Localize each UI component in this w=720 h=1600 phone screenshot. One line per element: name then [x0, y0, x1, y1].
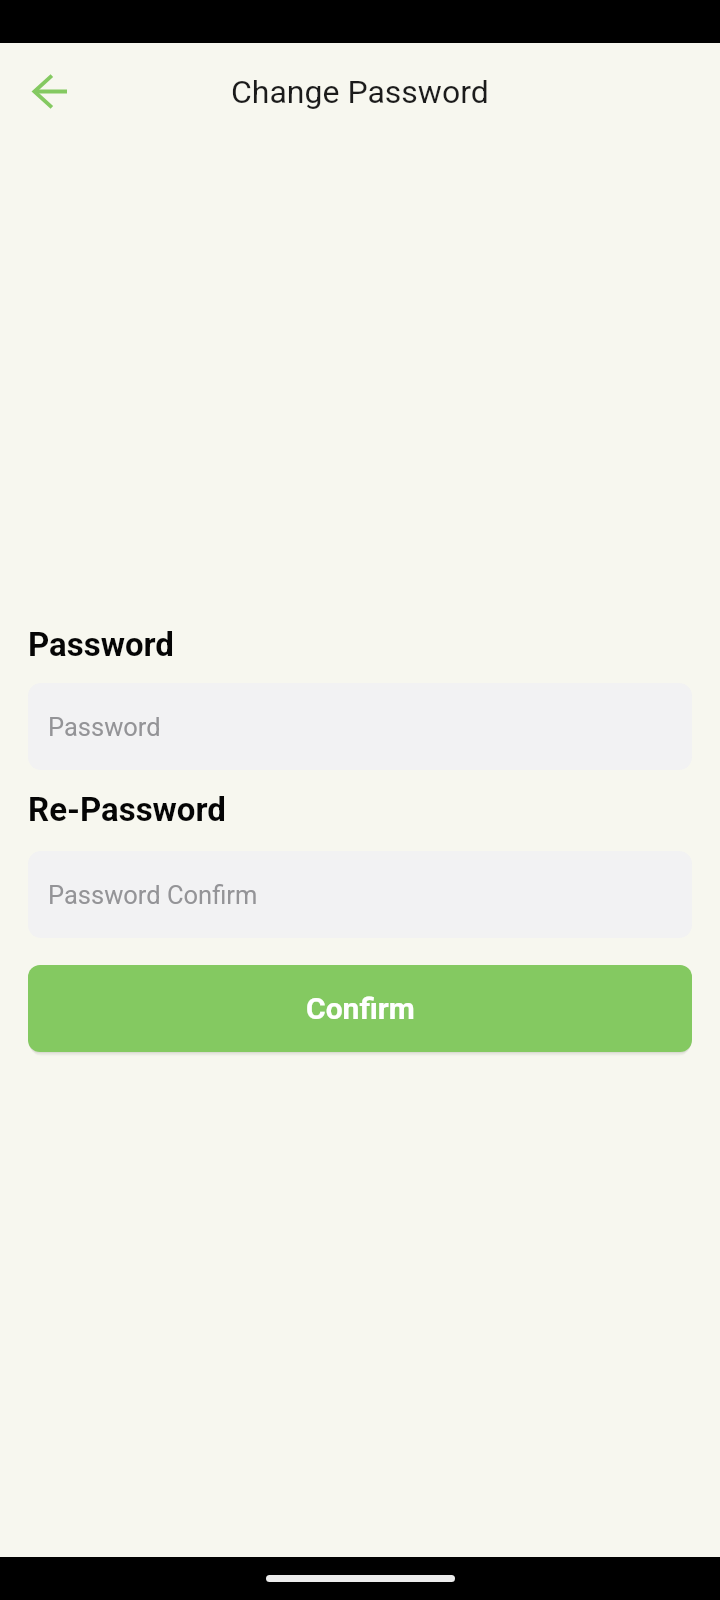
- staticText: Password: [48, 712, 161, 742]
- staticText: Confirm: [306, 991, 415, 1026]
- button[interactable]: Confirm: [28, 965, 692, 1052]
- button[interactable]: Password: [28, 683, 692, 770]
- staticText: Password Confirm: [48, 880, 258, 910]
- button[interactable]: Password Confirm: [28, 851, 692, 938]
- button[interactable]: Back: [17, 59, 81, 123]
- staticText: Password: [28, 625, 174, 664]
- staticText: Change Password: [231, 73, 489, 111]
- staticText: Re-Password: [28, 790, 226, 829]
